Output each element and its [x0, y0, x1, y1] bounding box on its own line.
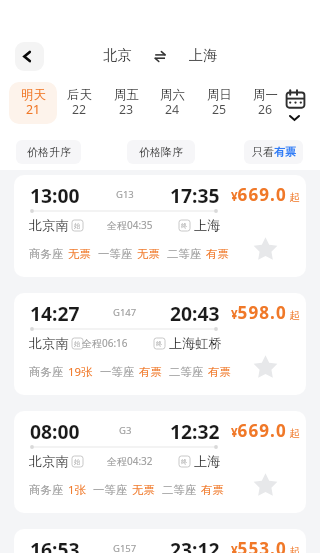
staticText: 一等座 [93, 483, 128, 497]
staticText: 始 [74, 340, 81, 348]
staticText: 上海 [189, 46, 218, 64]
button[interactable]: 16:53 [14, 529, 306, 553]
staticText: 14:27 [30, 300, 80, 324]
staticText: G157 [113, 542, 137, 553]
staticText: G3 [119, 424, 132, 437]
staticText: 全程04:35 [107, 218, 153, 232]
staticText: 21 [26, 101, 41, 118]
staticText: 周日 [207, 87, 232, 103]
staticText: ¥669.0 起 [231, 183, 300, 206]
staticText: 周五 [114, 87, 139, 103]
staticText: 二等座 [167, 247, 202, 261]
staticText: 有票 [201, 483, 224, 497]
staticText: 北京南 [29, 335, 69, 352]
staticText: 无票 [68, 247, 91, 261]
button[interactable]: 周一 [241, 82, 289, 124]
staticText: 全程06:16 [82, 336, 128, 350]
staticText: 价格降序 [139, 145, 183, 159]
staticText: 23 [119, 101, 134, 118]
button[interactable]: 价格降序 [127, 140, 195, 164]
staticText: 一等座 [98, 247, 133, 261]
staticText: 23:12 [170, 536, 220, 553]
staticText: ¥553.0 起 [231, 537, 300, 553]
staticText: 商务座 [29, 247, 64, 261]
staticText: 始 [74, 458, 81, 466]
staticText: 12:32 [170, 418, 220, 442]
staticText: 26 [258, 101, 273, 118]
button[interactable]: 14:27 [14, 293, 306, 395]
staticText: ¥669.0 起 [231, 419, 300, 442]
staticText: 上海 [194, 217, 221, 234]
staticText: 终 [181, 458, 188, 466]
staticText: 无票 [137, 247, 160, 261]
staticText: 一等座 [100, 365, 135, 379]
staticText: G13 [116, 188, 134, 201]
staticText: 25 [212, 101, 227, 118]
button[interactable]: 只看有票 [244, 140, 303, 164]
staticText: 20:43 [170, 300, 220, 324]
staticText: ¥598.0 起 [231, 301, 300, 324]
staticText: 始 [74, 222, 81, 230]
staticText: 商务座 [29, 365, 64, 379]
staticText: 上海 [194, 453, 221, 470]
button[interactable]: Back [15, 42, 44, 71]
staticText: 有票 [139, 365, 162, 379]
staticText: 二等座 [169, 365, 204, 379]
staticText: 08:00 [30, 418, 80, 442]
staticText: 全程04:32 [107, 454, 153, 468]
button[interactable]: 价格升序 [16, 140, 81, 164]
staticText: 22 [72, 101, 87, 118]
staticText: 终 [156, 340, 163, 348]
button[interactable]: 明天 [9, 82, 57, 124]
staticText: 北京南 [29, 453, 69, 470]
staticText: 北京南 [29, 217, 69, 234]
staticText: 北京 [103, 46, 132, 64]
staticText: 周六 [160, 87, 185, 103]
staticText: 无票 [132, 483, 155, 497]
button[interactable]: 08:00 [14, 411, 306, 513]
staticText: 上海虹桥 [169, 335, 222, 352]
button[interactable]: 后天 [55, 82, 103, 124]
staticText: 周一 [253, 87, 278, 103]
button[interactable]: 13:00 [14, 175, 306, 277]
staticText: 16:53 [30, 536, 80, 553]
staticText: 后天 [67, 87, 92, 103]
button[interactable]: 周五 [102, 82, 150, 124]
staticText: 只看有票 [252, 145, 296, 159]
staticText: 17:35 [170, 182, 220, 206]
staticText: G147 [113, 306, 137, 319]
staticText: 有票 [206, 247, 229, 261]
staticText: 明天 [21, 87, 46, 103]
button[interactable]: Select date [281, 82, 310, 124]
staticText: 有票 [208, 365, 231, 379]
staticText: 19张 [68, 364, 93, 380]
button[interactable]: 周日 [195, 82, 243, 124]
staticText: 终 [181, 222, 188, 230]
staticText: 1张 [68, 482, 86, 498]
staticText: 价格升序 [27, 145, 71, 159]
staticText: 13:00 [30, 182, 80, 206]
button[interactable]: 周六 [148, 82, 196, 124]
staticText: 商务座 [29, 483, 64, 497]
staticText: 二等座 [162, 483, 197, 497]
staticText: 24 [165, 101, 180, 118]
